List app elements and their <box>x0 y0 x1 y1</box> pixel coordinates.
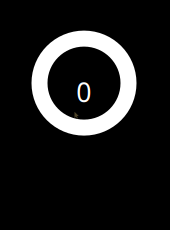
button[interactable]: Progress: 0 <box>31 31 136 136</box>
staticText: 0 <box>76 74 91 110</box>
